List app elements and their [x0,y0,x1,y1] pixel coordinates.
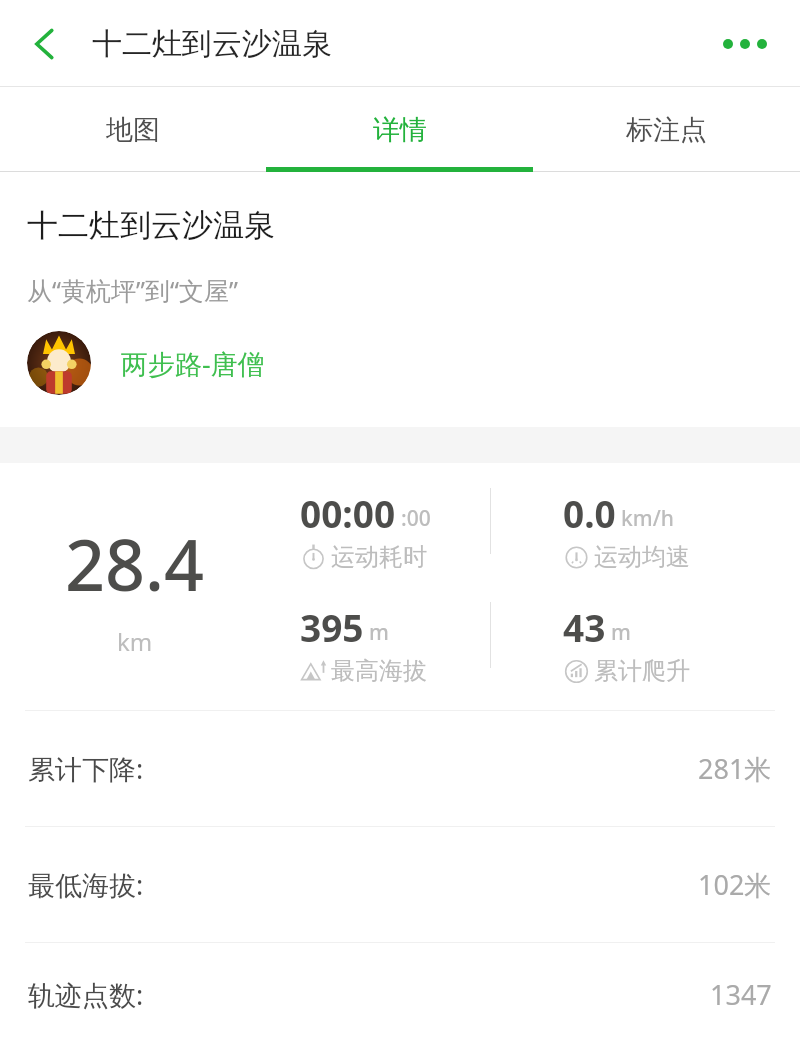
button[interactable]: 两步路-唐僧 [27,331,265,395]
staticText: 从“黄杭坪”到“文屋” [27,273,238,307]
staticText: 累计下降: [28,750,144,787]
staticText: 两步路-唐僧 [121,345,265,382]
button[interactable]: 地图 [0,87,266,172]
staticText: 轨迹点数: [28,976,144,1013]
staticText: m [611,618,631,647]
staticText: 最高海拔 [331,656,427,686]
staticText: 00:00 [300,488,396,538]
staticText: 281米 [698,750,772,787]
staticText: km [117,625,153,658]
staticText: 累计爬升 [594,656,690,686]
staticText: 395 [300,602,364,652]
button[interactable]: 轨迹点数: [0,943,800,1045]
staticText: 十二灶到云沙温泉 [27,206,275,245]
staticText: 28.4 [65,516,205,611]
staticText: :00 [401,504,431,533]
button[interactable]: 标注点 [533,87,800,172]
staticText: 详情 [373,113,427,147]
staticText: 43 [563,602,606,652]
staticText: 十二灶到云沙温泉 [92,25,332,63]
staticText: 标注点 [626,113,707,147]
button[interactable]: 累计下降: [0,711,800,826]
button[interactable]: Back [14,13,76,75]
button[interactable]: 详情 [266,87,533,172]
staticText: 地图 [106,113,160,147]
staticText: km/h [621,504,674,533]
staticText: m [369,618,389,647]
button[interactable]: More options [706,13,784,75]
staticText: 最低海拔: [28,866,144,903]
staticText: 运动均速 [594,542,690,572]
staticText: 102米 [698,866,772,903]
staticText: 运动耗时 [331,542,427,572]
staticText: 0.0 [563,488,616,538]
button[interactable]: 最低海拔: [0,827,800,942]
staticText: 1347 [710,976,772,1013]
